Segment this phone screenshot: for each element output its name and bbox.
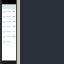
button[interactable] — [2, 9, 16, 14]
button[interactable] — [2, 39, 16, 44]
button[interactable] — [2, 34, 16, 39]
button[interactable] — [2, 19, 16, 24]
button[interactable] — [2, 29, 16, 34]
button[interactable] — [2, 14, 16, 19]
button[interactable] — [2, 24, 16, 29]
